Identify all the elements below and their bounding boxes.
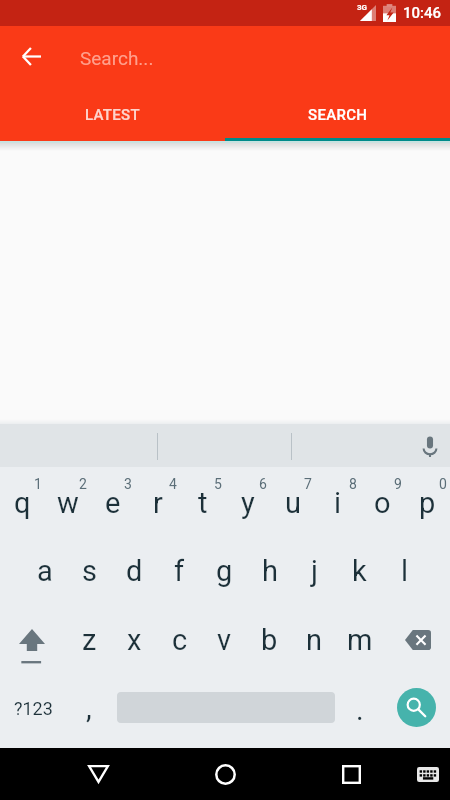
- staticText: e: [105, 486, 121, 520]
- staticText: 1: [34, 476, 42, 492]
- button[interactable]: 3: [90, 467, 135, 537]
- staticText: z: [82, 623, 97, 657]
- button[interactable]: b: [247, 607, 292, 677]
- button[interactable]: z: [67, 607, 112, 677]
- button[interactable]: Back: [0, 26, 62, 92]
- button[interactable]: 7: [270, 467, 315, 537]
- staticText: 7: [304, 476, 312, 492]
- staticText: l: [401, 554, 409, 588]
- button[interactable]: s: [67, 537, 112, 607]
- staticText: x: [127, 623, 142, 657]
- button[interactable]: g: [202, 537, 247, 607]
- button[interactable]: Search: [397, 688, 436, 727]
- button[interactable]: LATEST: [0, 92, 225, 141]
- staticText: o: [374, 486, 391, 520]
- staticText: 3: [124, 476, 132, 492]
- staticText: 2: [79, 476, 87, 492]
- staticText: w: [57, 486, 79, 520]
- button[interactable]: m: [337, 607, 382, 677]
- staticText: 0: [439, 476, 447, 492]
- button[interactable]: a: [22, 537, 67, 607]
- staticText: c: [172, 623, 188, 657]
- button[interactable]: 9: [360, 467, 405, 537]
- staticText: 6: [259, 476, 267, 492]
- button[interactable]: 1: [0, 467, 45, 537]
- button[interactable]: Backspace: [382, 607, 450, 677]
- button[interactable]: 4: [135, 467, 180, 537]
- button[interactable]: v: [202, 607, 247, 677]
- button[interactable]: 6: [225, 467, 270, 537]
- button[interactable]: 2: [45, 467, 90, 537]
- button[interactable]: Recents: [325, 748, 377, 800]
- staticText: 9: [394, 476, 402, 492]
- staticText: s: [82, 554, 97, 588]
- button[interactable]: .: [337, 677, 382, 748]
- button[interactable]: Back: [72, 748, 124, 800]
- staticText: r: [153, 486, 163, 520]
- staticText: p: [419, 486, 436, 520]
- button[interactable]: 5: [180, 467, 225, 537]
- staticText: b: [261, 623, 278, 657]
- button[interactable]: k: [337, 537, 382, 607]
- staticText: SEARCH: [308, 106, 368, 124]
- button[interactable]: d: [112, 537, 157, 607]
- staticText: .: [356, 693, 364, 727]
- staticText: 8: [349, 476, 357, 492]
- button[interactable]: 8: [315, 467, 360, 537]
- staticText: 10:46: [403, 4, 442, 22]
- button[interactable]: ,: [67, 677, 112, 748]
- staticText: k: [352, 554, 367, 588]
- staticText: ,: [86, 691, 92, 725]
- staticText: m: [347, 623, 373, 657]
- button[interactable]: 0: [405, 467, 450, 537]
- button[interactable]: Voice input: [414, 435, 446, 457]
- button[interactable]: h: [247, 537, 292, 607]
- staticText: j: [311, 554, 318, 588]
- button[interactable]: Shift: [0, 607, 67, 677]
- button[interactable]: Switch keyboard: [402, 748, 450, 800]
- staticText: n: [306, 623, 323, 657]
- staticText: i: [334, 486, 342, 520]
- staticText: u: [285, 486, 301, 520]
- staticText: ?123: [14, 698, 53, 719]
- button[interactable]: j: [292, 537, 337, 607]
- button[interactable]: ?123: [0, 677, 67, 748]
- staticText: f: [174, 554, 185, 588]
- staticText: g: [216, 554, 233, 588]
- button[interactable]: n: [292, 607, 337, 677]
- staticText: 5: [214, 476, 222, 492]
- button[interactable]: Home: [199, 748, 251, 800]
- button[interactable]: c: [157, 607, 202, 677]
- button[interactable]: SEARCH: [225, 92, 450, 141]
- staticText: y: [241, 486, 255, 520]
- staticText: v: [217, 623, 232, 657]
- staticText: t: [198, 486, 208, 520]
- button[interactable]: l: [382, 537, 427, 607]
- staticText: LATEST: [85, 106, 140, 124]
- button[interactable]: f: [157, 537, 202, 607]
- staticText: a: [37, 554, 53, 588]
- staticText: h: [262, 554, 278, 588]
- staticText: Search...: [80, 47, 154, 69]
- staticText: 4: [169, 476, 177, 492]
- staticText: d: [126, 554, 143, 588]
- staticText: 3G: [357, 3, 368, 12]
- button[interactable]: x: [112, 607, 157, 677]
- staticText: q: [14, 486, 31, 520]
